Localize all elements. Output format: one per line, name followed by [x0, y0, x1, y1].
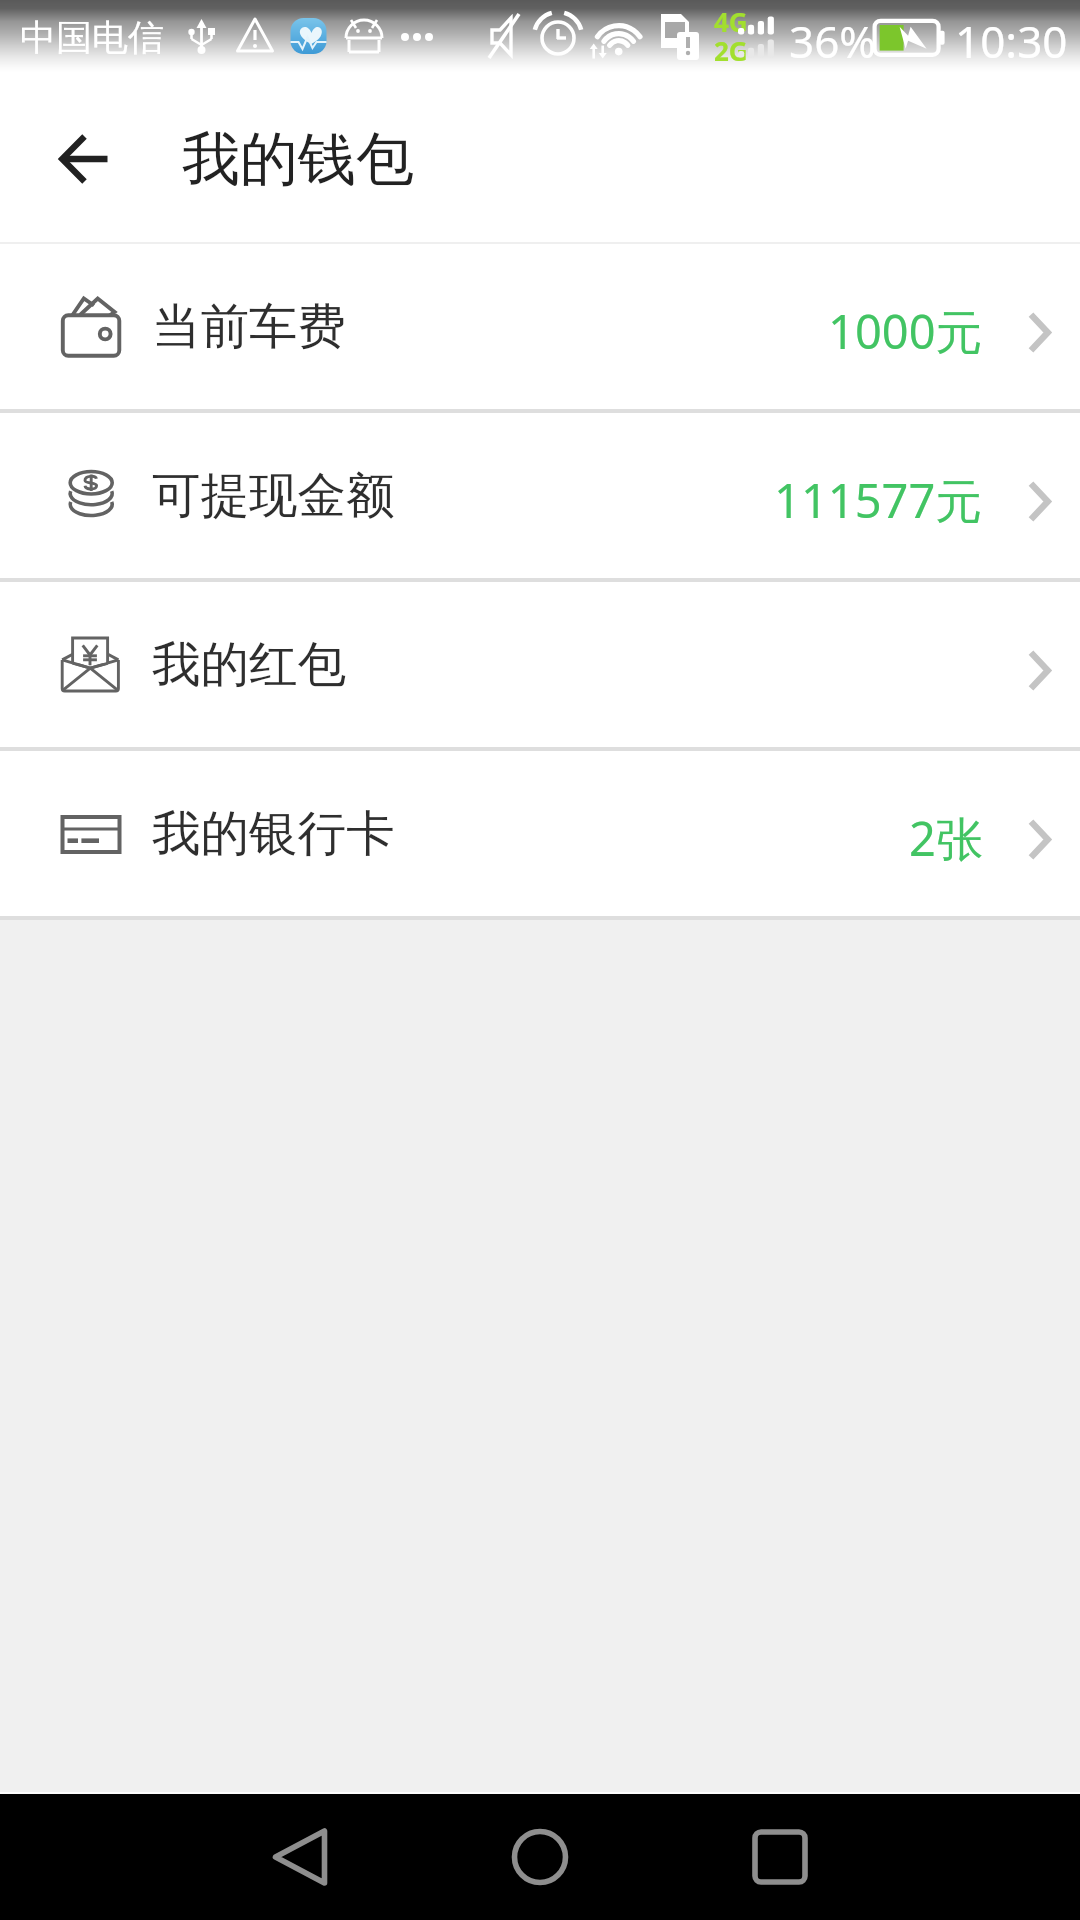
button[interactable]: 我的银行卡 [0, 751, 1080, 916]
button[interactable]: 我的红包 [0, 582, 1080, 747]
button[interactable]: 当前车费 [0, 244, 1080, 409]
staticText: 可提现金额 [152, 465, 395, 526]
staticText: 111577元 [774, 468, 983, 532]
staticText: 当前车费 [152, 296, 346, 357]
button[interactable]: Back [36, 111, 132, 207]
button[interactable]: Recents [720, 1794, 840, 1920]
button[interactable]: Home [480, 1794, 600, 1920]
staticText: 36% [789, 11, 876, 71]
staticText: 2G [714, 33, 748, 68]
staticText: 10:30 [955, 11, 1068, 71]
staticText: 2张 [909, 806, 983, 870]
staticText: 我的银行卡 [152, 803, 395, 864]
staticText: 1000元 [828, 299, 983, 363]
staticText: 4G [714, 4, 748, 39]
staticText: 我的钱包 [182, 123, 414, 196]
button[interactable]: 可提现金额 [0, 413, 1080, 578]
staticText: 我的红包 [152, 634, 346, 695]
staticText: 中国电信 [20, 15, 164, 60]
button[interactable]: Back [240, 1794, 360, 1920]
